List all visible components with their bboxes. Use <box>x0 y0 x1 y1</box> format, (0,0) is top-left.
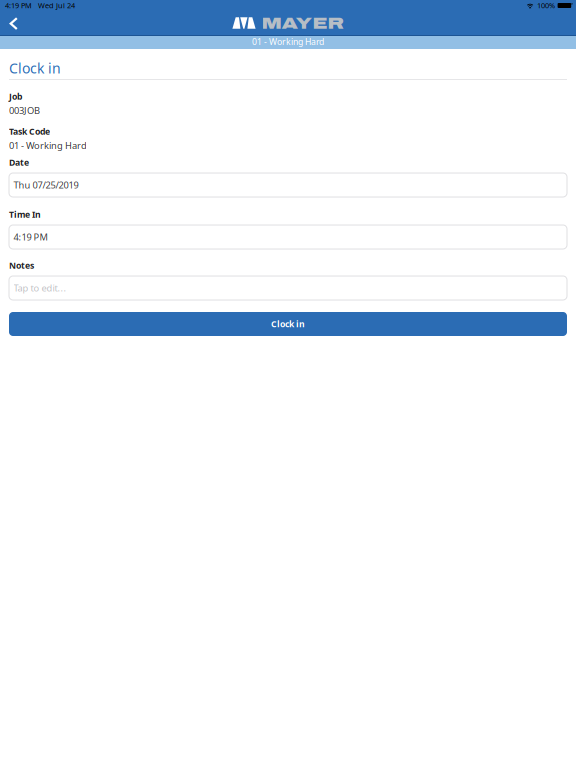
staticText: Clock in <box>9 58 61 78</box>
staticText: 003JOB <box>9 104 40 117</box>
staticText: Wed Jul 24 <box>38 0 75 10</box>
staticText: 01 - Working Hard <box>9 139 87 152</box>
staticText: Thu 07/25/2019 <box>13 179 78 191</box>
staticText: Notes <box>9 260 34 271</box>
staticText: Tap to edit... <box>13 282 66 294</box>
button[interactable]: Thu 07/25/2019 <box>9 173 567 197</box>
staticText: MAYER <box>262 14 344 32</box>
staticText: Date <box>9 157 29 168</box>
staticText: Clock in <box>271 318 305 330</box>
button[interactable]: Back <box>0 11 26 35</box>
staticText: 4:19 PM <box>5 0 32 10</box>
staticText: Job <box>9 91 22 102</box>
button[interactable]: Tap to edit... <box>9 276 567 300</box>
staticText: 01 - Working Hard <box>252 36 324 48</box>
button[interactable]: Clock in <box>9 312 567 336</box>
button[interactable]: 4:19 PM <box>9 225 567 249</box>
staticText: Task Code <box>9 126 50 137</box>
staticText: 4:19 PM <box>13 231 47 243</box>
staticText: Time In <box>9 209 41 220</box>
staticText: 100% <box>537 0 555 10</box>
